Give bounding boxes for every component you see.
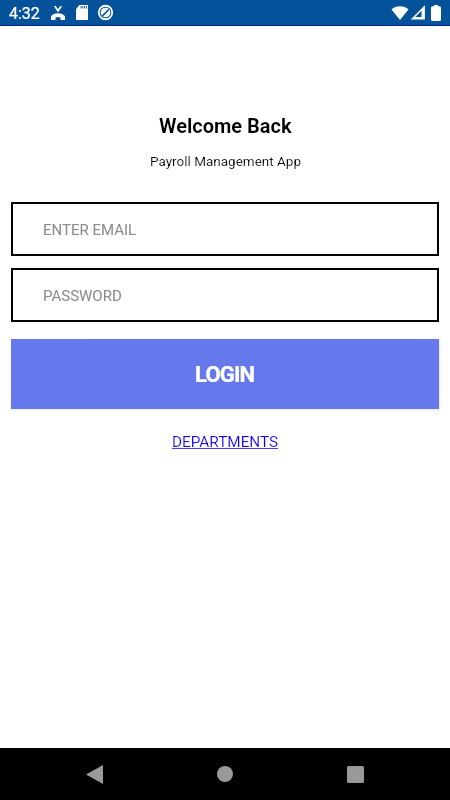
button[interactable]: Back [70, 748, 118, 800]
staticText: Payroll Management App [150, 153, 301, 169]
staticText: 4:32 [9, 4, 40, 23]
button[interactable]: Recent apps [331, 748, 379, 800]
button[interactable]: Home [201, 748, 249, 800]
button[interactable]: PASSWORD [11, 268, 439, 322]
staticText: Welcome Back [159, 114, 292, 137]
staticText: PASSWORD [43, 287, 122, 305]
button[interactable]: DEPARTMENTS [172, 433, 279, 451]
button[interactable]: ENTER EMAIL [11, 202, 439, 256]
button[interactable]: LOGIN [11, 339, 439, 409]
staticText: LOGIN [195, 362, 255, 388]
staticText: DEPARTMENTS [172, 433, 279, 451]
staticText: ENTER EMAIL [43, 221, 137, 239]
